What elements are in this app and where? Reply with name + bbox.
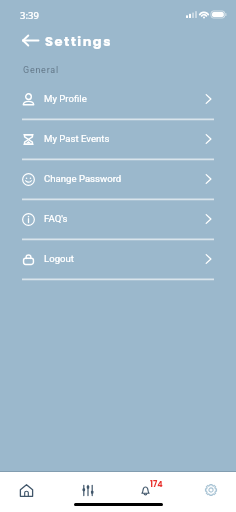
button[interactable]: FAQ's: [0, 199, 236, 239]
staticText: FAQ's: [44, 213, 68, 224]
staticText: 174: [150, 479, 163, 490]
staticText: 3:39: [20, 9, 39, 22]
button[interactable]: Logout: [0, 239, 236, 279]
staticText: General: [23, 65, 59, 76]
staticText: My Profile: [44, 93, 87, 104]
staticText: My Past Events: [44, 133, 110, 144]
button[interactable]: My Past Events: [0, 119, 236, 159]
staticText: Logout: [44, 253, 74, 264]
button[interactable]: Notifications: [133, 476, 159, 502]
staticText: Change Password: [44, 173, 122, 184]
button[interactable]: Home: [13, 477, 39, 503]
button[interactable]: Filters: [75, 477, 101, 503]
button[interactable]: Change Password: [0, 159, 236, 199]
staticText: Settings: [45, 32, 112, 50]
button[interactable]: Back: [20, 31, 40, 50]
button[interactable]: Settings: [198, 477, 224, 503]
button[interactable]: My Profile: [0, 79, 236, 119]
